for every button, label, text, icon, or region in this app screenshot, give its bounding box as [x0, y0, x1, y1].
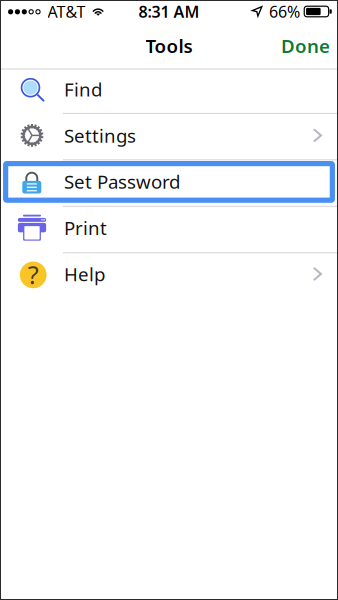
button[interactable]: Set Password: [0, 158, 338, 205]
button[interactable]: Print: [0, 205, 338, 251]
staticText: Find: [64, 77, 102, 102]
staticText: Set Password: [64, 169, 180, 194]
staticText: Print: [64, 215, 107, 240]
button[interactable]: ?: [0, 251, 338, 297]
button[interactable]: Find: [0, 66, 338, 112]
button[interactable]: Done: [272, 26, 338, 65]
staticText: Help: [64, 262, 105, 286]
staticText: 66%: [269, 1, 300, 22]
staticText: AT&T: [47, 1, 85, 22]
staticText: Settings: [64, 123, 136, 148]
staticText: 8:31 AM: [138, 1, 199, 22]
staticText: ?: [28, 258, 39, 291]
button[interactable]: Settings: [0, 112, 338, 159]
staticText: Done: [281, 33, 330, 58]
staticText: Tools: [145, 33, 192, 58]
